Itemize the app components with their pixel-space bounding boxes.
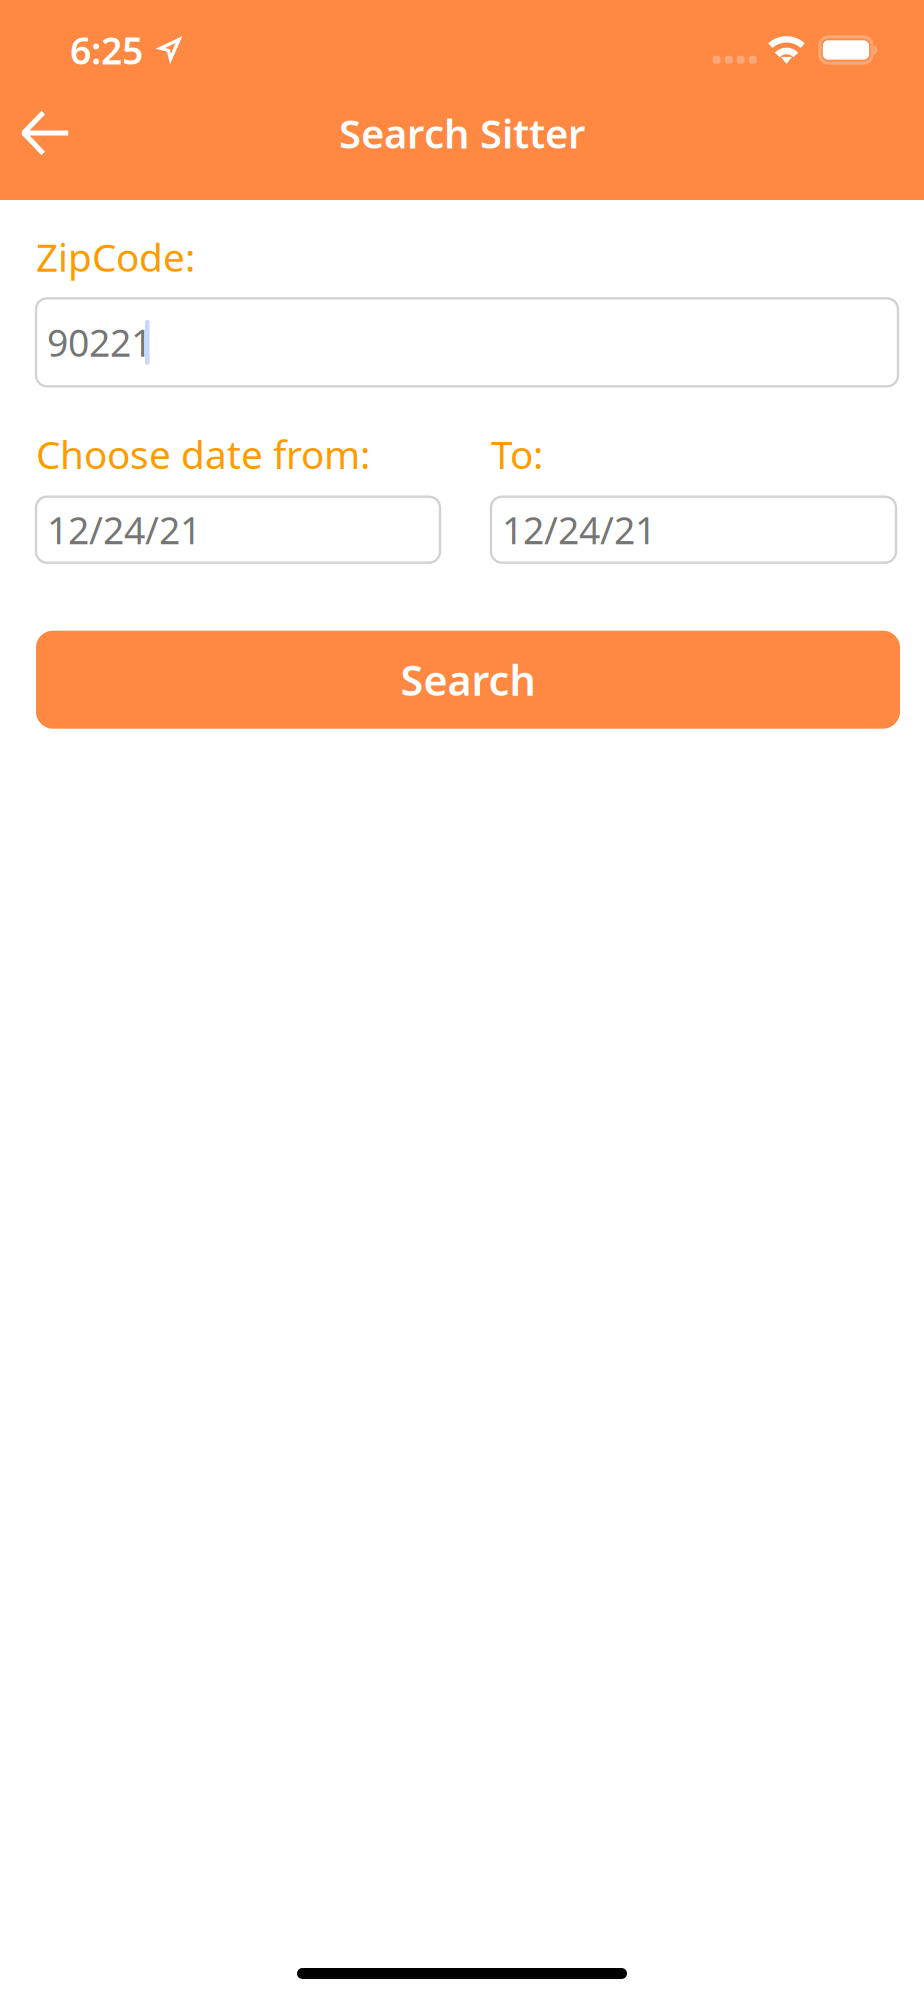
button[interactable]: ZipCode xyxy=(36,298,898,386)
staticText: 12/24/21 xyxy=(47,505,201,554)
staticText: 12/24/21 xyxy=(502,505,656,554)
button[interactable]: Back xyxy=(0,89,88,177)
staticText: 90221 xyxy=(47,318,152,367)
staticText: Choose date from: xyxy=(36,428,370,480)
staticText: 6:25 xyxy=(70,25,143,75)
staticText: Search Sitter xyxy=(339,106,585,159)
button[interactable]: Choose date from xyxy=(36,497,440,563)
staticText: ZipCode: xyxy=(36,231,195,282)
staticText: To: xyxy=(491,428,543,480)
button[interactable]: Search xyxy=(36,631,900,729)
button[interactable]: To date xyxy=(491,497,896,563)
staticText: Search xyxy=(400,652,535,707)
